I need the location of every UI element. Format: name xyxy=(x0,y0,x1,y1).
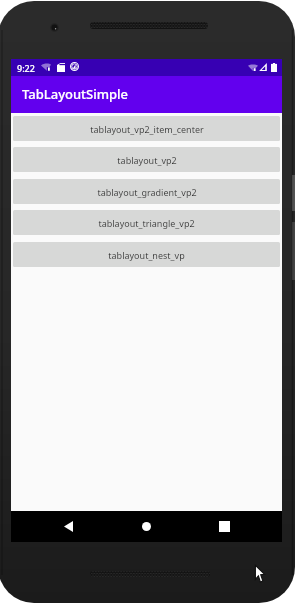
button[interactable]: Back xyxy=(53,511,83,541)
button[interactable]: tablayout_gradient_vp2 xyxy=(13,179,280,204)
staticText: tablayout_gradient_vp2 xyxy=(97,186,197,198)
staticText: tablayout_nest_vp xyxy=(108,249,185,261)
staticText: tablayout_vp2_item_center xyxy=(90,123,204,135)
staticText: 9:22 xyxy=(17,62,35,74)
button[interactable]: tablayout_vp2_item_center xyxy=(13,116,280,141)
button[interactable]: tablayout_nest_vp xyxy=(13,242,280,267)
staticText: tablayout_triangle_vp2 xyxy=(98,217,195,229)
button[interactable]: Recent apps xyxy=(209,511,239,541)
staticText: tablayout_vp2 xyxy=(117,154,177,166)
staticText: TabLayoutSimple xyxy=(22,85,129,103)
button[interactable]: tablayout_vp2 xyxy=(13,147,280,172)
button[interactable]: tablayout_triangle_vp2 xyxy=(13,210,280,235)
button[interactable]: Home xyxy=(131,511,161,541)
